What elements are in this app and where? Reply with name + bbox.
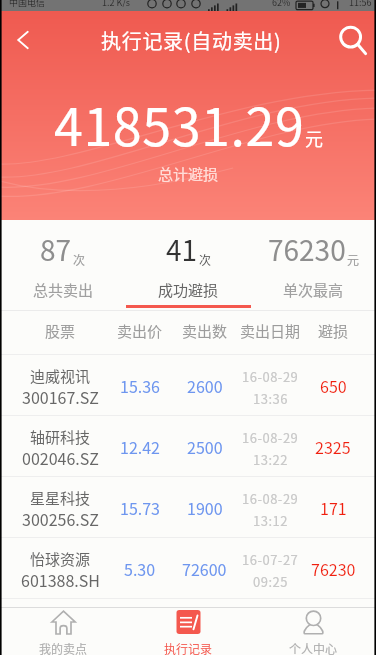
- staticText: 个人中心: [289, 640, 338, 655]
- staticText: 元: [305, 125, 323, 151]
- staticText: 15.73: [120, 496, 160, 519]
- staticText: 总计避损: [158, 163, 219, 185]
- staticText: 卖出数: [182, 320, 228, 342]
- staticText: 迪威视讯: [30, 365, 91, 387]
- staticText: 76230: [311, 557, 356, 580]
- staticText: 418531.29: [54, 86, 305, 161]
- staticText: 09:25: [253, 572, 288, 591]
- staticText: 002046.SZ: [22, 446, 99, 469]
- staticText: 300256.SZ: [22, 507, 99, 530]
- button[interactable]: 87: [0, 220, 126, 311]
- button[interactable]: 星星科技: [0, 477, 376, 538]
- staticText: 300167.SZ: [22, 385, 99, 408]
- staticText: 13:12: [253, 511, 288, 530]
- staticText: 171: [320, 496, 347, 519]
- button[interactable]: Search: [328, 16, 376, 64]
- button[interactable]: 我的卖点: [0, 607, 126, 655]
- button[interactable]: 迪威视讯: [0, 355, 376, 416]
- staticText: 76230: [268, 229, 346, 270]
- staticText: 1900: [187, 496, 223, 519]
- button[interactable]: 41: [126, 220, 251, 311]
- staticText: 总共卖出: [33, 279, 94, 301]
- staticText: 单次最高: [283, 279, 344, 301]
- staticText: 5.30: [124, 557, 156, 580]
- staticText: 13:36: [253, 389, 288, 408]
- staticText: 避损: [318, 320, 349, 342]
- button[interactable]: 76230: [251, 220, 376, 311]
- staticText: 13:22: [253, 450, 288, 469]
- staticText: 中国电信: [9, 0, 46, 7]
- staticText: 轴研科技: [30, 426, 91, 448]
- staticText: 62%: [272, 0, 291, 7]
- staticText: 11:56: [349, 0, 372, 7]
- staticText: 601388.SH: [21, 568, 100, 591]
- staticText: 次: [199, 251, 212, 268]
- staticText: 执行记录(自动卖出): [101, 26, 282, 55]
- staticText: 16-08-29: [242, 428, 299, 447]
- staticText: 16-07-27: [242, 550, 299, 569]
- button[interactable]: 个人中心: [251, 607, 376, 655]
- staticText: 41: [166, 229, 198, 270]
- staticText: 15.36: [120, 374, 160, 397]
- button[interactable]: 轴研科技: [0, 416, 376, 477]
- staticText: 650: [320, 374, 347, 397]
- staticText: 执行记录: [164, 640, 213, 655]
- staticText: 87: [40, 229, 72, 270]
- staticText: 12.42: [120, 435, 160, 458]
- staticText: 2600: [187, 374, 223, 397]
- staticText: 我的卖点: [39, 640, 88, 655]
- button[interactable]: Back: [0, 17, 46, 63]
- staticText: 星星科技: [30, 487, 91, 509]
- staticText: 元: [347, 251, 360, 268]
- staticText: 16-08-29: [242, 489, 299, 508]
- staticText: 1.2 K/s: [102, 0, 131, 7]
- staticText: 股票: [45, 320, 76, 342]
- staticText: 成功避损: [158, 279, 219, 301]
- staticText: 16-08-29: [242, 367, 299, 386]
- button[interactable]: 执行记录: [126, 607, 251, 655]
- staticText: 卖出日期: [240, 320, 301, 342]
- staticText: 次: [73, 251, 86, 268]
- staticText: 卖出价: [117, 320, 163, 342]
- staticText: 怡球资源: [30, 548, 91, 570]
- button[interactable]: 怡球资源: [0, 538, 376, 599]
- staticText: 2500: [187, 435, 223, 458]
- staticText: 72600: [182, 557, 227, 580]
- staticText: 2325: [315, 435, 351, 458]
